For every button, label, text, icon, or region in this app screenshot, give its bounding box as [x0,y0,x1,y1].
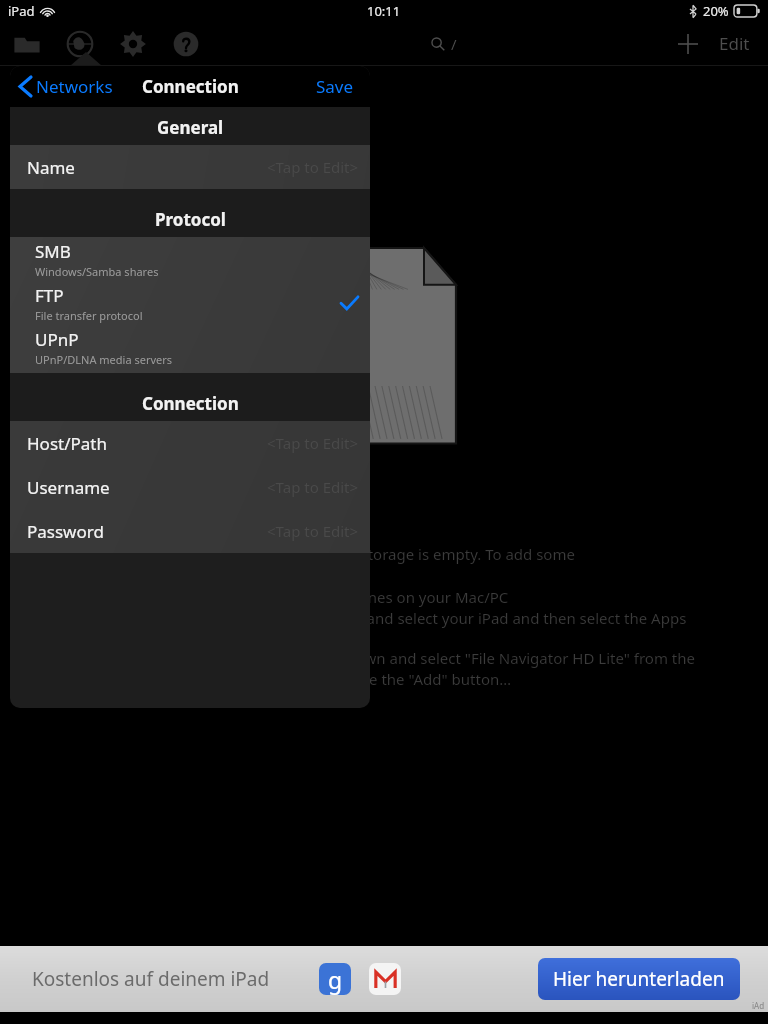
button[interactable]: FTP [10,281,370,325]
staticText: Username [27,476,110,499]
button[interactable]: Add [671,27,705,61]
staticText: <Tap to Edit> [267,477,359,497]
staticText: General [157,116,224,139]
staticText: Connection [142,392,239,415]
staticText: Hier herunterladen [553,966,725,992]
staticText: iPad [8,2,35,20]
staticText: File transfer protocol [35,308,143,323]
staticText: UPnP/DLNA media servers [35,352,173,367]
button[interactable]: Settings [106,22,159,65]
staticText: 2. Connect and select your iPad and then… [288,608,687,628]
staticText: SMB [35,240,71,263]
button[interactable]: Edit [715,26,754,61]
staticText: FTP [35,284,64,307]
button[interactable]: Networks [16,71,117,102]
button[interactable]: Kostenlos auf deinem iPad [0,946,768,1012]
staticText: Password [27,520,104,543]
staticText: <Tap to Edit> [267,521,359,541]
button[interactable]: Files [0,22,53,65]
button[interactable]: Name [10,145,370,189]
staticText: Name [27,156,75,179]
button[interactable]: UPnP [10,325,370,369]
staticText: Edit [719,32,750,55]
staticText: Kostenlos auf deinem iPad [32,966,270,992]
staticText: 20% [703,2,729,20]
button[interactable]: Username [10,465,370,509]
staticText: list, then use the "Add" button… [288,669,512,689]
staticText: Host/Path [27,432,107,455]
staticText: UPnP [35,328,79,351]
staticText: Protocol [155,208,226,231]
button[interactable]: Hier herunterladen [538,958,740,1000]
staticText: g [328,964,343,995]
staticText: 10:11 [367,2,401,20]
staticText: <Tap to Edit> [267,433,359,453]
button[interactable]: Help [159,22,212,65]
staticText: Networks [36,75,113,98]
staticText: Connection [142,75,239,98]
button[interactable]: Password [10,509,370,553]
staticText: Windows/Samba shares [35,264,159,279]
staticText: Save [316,75,354,98]
staticText: iAd [752,1000,765,1011]
button[interactable]: Save [312,71,358,102]
button[interactable]: Network [53,22,106,65]
staticText: / [451,34,457,54]
staticText: 3. Scroll down and select "File Navigato… [288,648,695,668]
staticText: 1. Open iTunes on your Mac/PC [288,587,509,607]
staticText: Your local storage is empty. To add some [288,544,575,564]
button[interactable]: SMB [10,237,370,281]
staticText: <Tap to Edit> [267,157,359,177]
button[interactable]: Host/Path [10,421,370,465]
